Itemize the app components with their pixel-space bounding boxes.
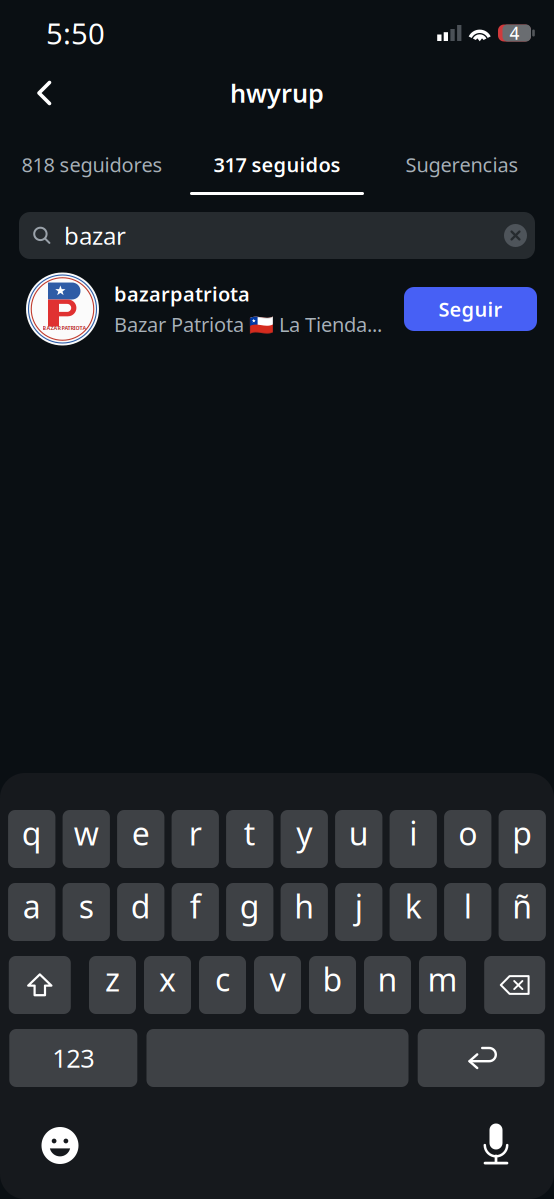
- staticText: o: [458, 812, 477, 854]
- button[interactable]: d: [117, 883, 164, 941]
- staticText: i: [409, 812, 417, 854]
- button[interactable]: 317 seguidos: [184, 137, 370, 195]
- staticText: f: [190, 885, 201, 927]
- button[interactable]: Emoji keyboard: [31, 1116, 89, 1174]
- button[interactable]: x: [144, 956, 191, 1014]
- staticText: Seguir: [438, 296, 502, 322]
- button[interactable]: Delete: [484, 956, 545, 1014]
- staticText: 123: [52, 1041, 94, 1075]
- button[interactable]: u: [335, 810, 382, 868]
- button[interactable]: z: [89, 956, 136, 1014]
- staticText: r: [189, 812, 202, 854]
- staticText: n: [377, 958, 397, 1000]
- button[interactable]: ñ: [499, 883, 546, 941]
- button[interactable]: n: [364, 956, 411, 1014]
- staticText: z: [105, 958, 120, 1000]
- staticText: b: [322, 958, 342, 1000]
- button[interactable]: s: [63, 883, 110, 941]
- staticText: bazar: [64, 220, 126, 251]
- button[interactable]: b: [309, 956, 356, 1014]
- staticText: Sugerencias: [405, 151, 518, 178]
- staticText: m: [427, 958, 457, 1000]
- button[interactable]: i: [390, 810, 437, 868]
- staticText: Bazar Patriota 🇨🇱 La Tienda...: [114, 311, 382, 338]
- button[interactable]: j: [335, 883, 382, 941]
- button[interactable]: g: [226, 883, 273, 941]
- button[interactable]: m: [419, 956, 466, 1014]
- button[interactable]: y: [281, 810, 328, 868]
- button[interactable]: v: [254, 956, 301, 1014]
- staticText: a: [23, 885, 41, 927]
- staticText: bazarpatriota: [114, 280, 250, 307]
- button[interactable]: Return: [418, 1029, 545, 1087]
- button[interactable]: a: [8, 883, 55, 941]
- staticText: p: [512, 812, 532, 854]
- button[interactable]: f: [172, 883, 219, 941]
- button[interactable]: Dictate: [467, 1116, 525, 1174]
- staticText: q: [22, 812, 42, 854]
- button[interactable]: e: [117, 810, 164, 868]
- staticText: t: [244, 812, 256, 854]
- button[interactable]: o: [444, 810, 491, 868]
- button[interactable]: bazar: [19, 212, 535, 259]
- staticText: 818 seguidores: [21, 151, 162, 178]
- button[interactable]: Back: [0, 65, 73, 121]
- staticText: y: [296, 812, 312, 854]
- button[interactable]: l: [444, 883, 491, 941]
- staticText: v: [269, 958, 285, 1000]
- button[interactable]: c: [199, 956, 246, 1014]
- staticText: hwyrup: [230, 76, 324, 110]
- staticText: w: [74, 812, 99, 854]
- button[interactable]: w: [63, 810, 110, 868]
- button[interactable]: Shift: [9, 956, 71, 1014]
- button[interactable]: q: [8, 810, 55, 868]
- staticText: h: [294, 885, 314, 927]
- button[interactable]: p: [499, 810, 546, 868]
- button[interactable]: t: [226, 810, 273, 868]
- staticText: c: [215, 958, 230, 1000]
- staticText: 5:50: [46, 13, 105, 52]
- staticText: ñ: [512, 885, 532, 927]
- staticText: j: [355, 885, 363, 927]
- staticText: u: [349, 812, 369, 854]
- staticText: s: [79, 885, 94, 927]
- button[interactable]: 123: [9, 1029, 137, 1087]
- staticText: d: [131, 885, 151, 927]
- button[interactable]: Sugerencias: [370, 137, 554, 195]
- button[interactable]: r: [172, 810, 219, 868]
- button[interactable]: 818 seguidores: [0, 137, 184, 195]
- staticText: l: [464, 885, 472, 927]
- staticText: k: [405, 885, 422, 927]
- staticText: BAZAR PATRIOTA: [42, 324, 86, 332]
- staticText: e: [132, 812, 150, 854]
- button[interactable]: k: [390, 883, 437, 941]
- button[interactable]: h: [281, 883, 328, 941]
- button[interactable]: BAZAR PATRIOTA: [0, 259, 554, 351]
- staticText: x: [159, 958, 176, 1000]
- staticText: g: [240, 885, 260, 927]
- staticText: 317 seguidos: [213, 151, 340, 178]
- staticText: 4: [509, 21, 519, 44]
